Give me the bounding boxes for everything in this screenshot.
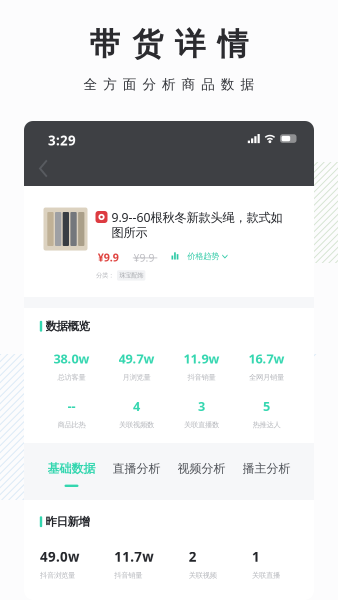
- button[interactable]: 基础数据: [39, 461, 104, 478]
- staticText: 全: [84, 76, 98, 93]
- staticText: 4: [133, 397, 140, 415]
- staticText: 49.0w: [40, 547, 79, 566]
- button[interactable]: 视频分析: [169, 461, 234, 478]
- staticText: ¥9.9: [134, 251, 155, 265]
- button[interactable]: 直播分析: [104, 461, 169, 478]
- staticText: 详: [175, 25, 206, 64]
- staticText: 视频分析: [177, 461, 225, 476]
- staticText: 商: [182, 76, 196, 93]
- staticText: 珠宝配饰: [119, 271, 143, 279]
- staticText: 价格趋势: [187, 251, 219, 261]
- staticText: 5: [263, 397, 270, 415]
- staticText: 热推达人: [252, 420, 280, 429]
- staticText: 49.7w: [118, 350, 154, 367]
- staticText: 2: [189, 547, 197, 566]
- staticText: 货: [132, 25, 163, 64]
- staticText: 据: [240, 76, 254, 93]
- staticText: 月浏览量: [122, 373, 150, 382]
- staticText: 面: [123, 76, 137, 93]
- staticText: 1: [252, 547, 260, 566]
- staticText: 抖音销量: [114, 571, 142, 580]
- staticText: 关联直播: [252, 571, 280, 580]
- staticText: 关联视频数: [119, 420, 154, 429]
- staticText: 数据概览: [46, 319, 90, 333]
- staticText: 方: [103, 76, 117, 93]
- staticText: 播主分析: [242, 461, 290, 476]
- staticText: 昨日新增: [46, 514, 90, 529]
- staticText: 11.9w: [183, 350, 219, 367]
- staticText: 图所示: [111, 225, 147, 240]
- staticText: ¥9.9: [98, 250, 119, 264]
- staticText: 16.7w: [248, 350, 284, 367]
- staticText: 品: [201, 76, 215, 93]
- staticText: 抖音销量: [187, 373, 215, 382]
- staticText: 38.0w: [53, 350, 89, 367]
- button[interactable]: 价格趋势: [187, 251, 227, 261]
- staticText: 全网月销量: [249, 373, 284, 382]
- staticText: 3:29: [48, 131, 76, 149]
- staticText: 9.9--60根秋冬新款头绳，款式如: [111, 209, 282, 225]
- staticText: 3: [198, 397, 205, 415]
- staticText: 析: [162, 76, 176, 93]
- staticText: 分: [142, 76, 156, 93]
- staticText: 基础数据: [47, 461, 95, 476]
- staticText: 分类：: [96, 271, 114, 279]
- staticText: --: [67, 397, 75, 415]
- staticText: 总访客量: [57, 373, 85, 382]
- staticText: 关联直播数: [184, 420, 219, 429]
- staticText: 11.7w: [114, 547, 153, 566]
- staticText: 情: [217, 25, 248, 64]
- staticText: 抖音浏览量: [40, 571, 75, 580]
- staticText: 商品比热: [57, 420, 85, 429]
- staticText: 直播分析: [112, 461, 160, 476]
- button[interactable]: Back: [27, 153, 59, 183]
- staticText: 关联视频: [189, 571, 217, 580]
- button[interactable]: 播主分析: [234, 461, 299, 478]
- staticText: 带: [90, 25, 121, 64]
- staticText: 数: [221, 76, 235, 93]
